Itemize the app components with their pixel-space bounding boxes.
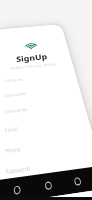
button[interactable]: Recents — [69, 171, 87, 192]
button[interactable]: Password — [0, 155, 92, 180]
button[interactable]: Home — [40, 175, 57, 196]
button[interactable]: Back — [9, 180, 25, 200]
staticText: Register with your details — [10, 62, 56, 71]
staticText: Fullname — [5, 77, 23, 84]
button[interactable]: Username — [0, 83, 74, 103]
staticText: Password — [5, 165, 30, 177]
button[interactable]: Username — [0, 98, 79, 120]
staticText: Email — [5, 126, 18, 135]
staticText: SignUp — [16, 51, 49, 64]
staticText: Username — [5, 107, 28, 116]
staticText: Phone — [5, 146, 21, 156]
staticText: Username — [5, 91, 26, 99]
